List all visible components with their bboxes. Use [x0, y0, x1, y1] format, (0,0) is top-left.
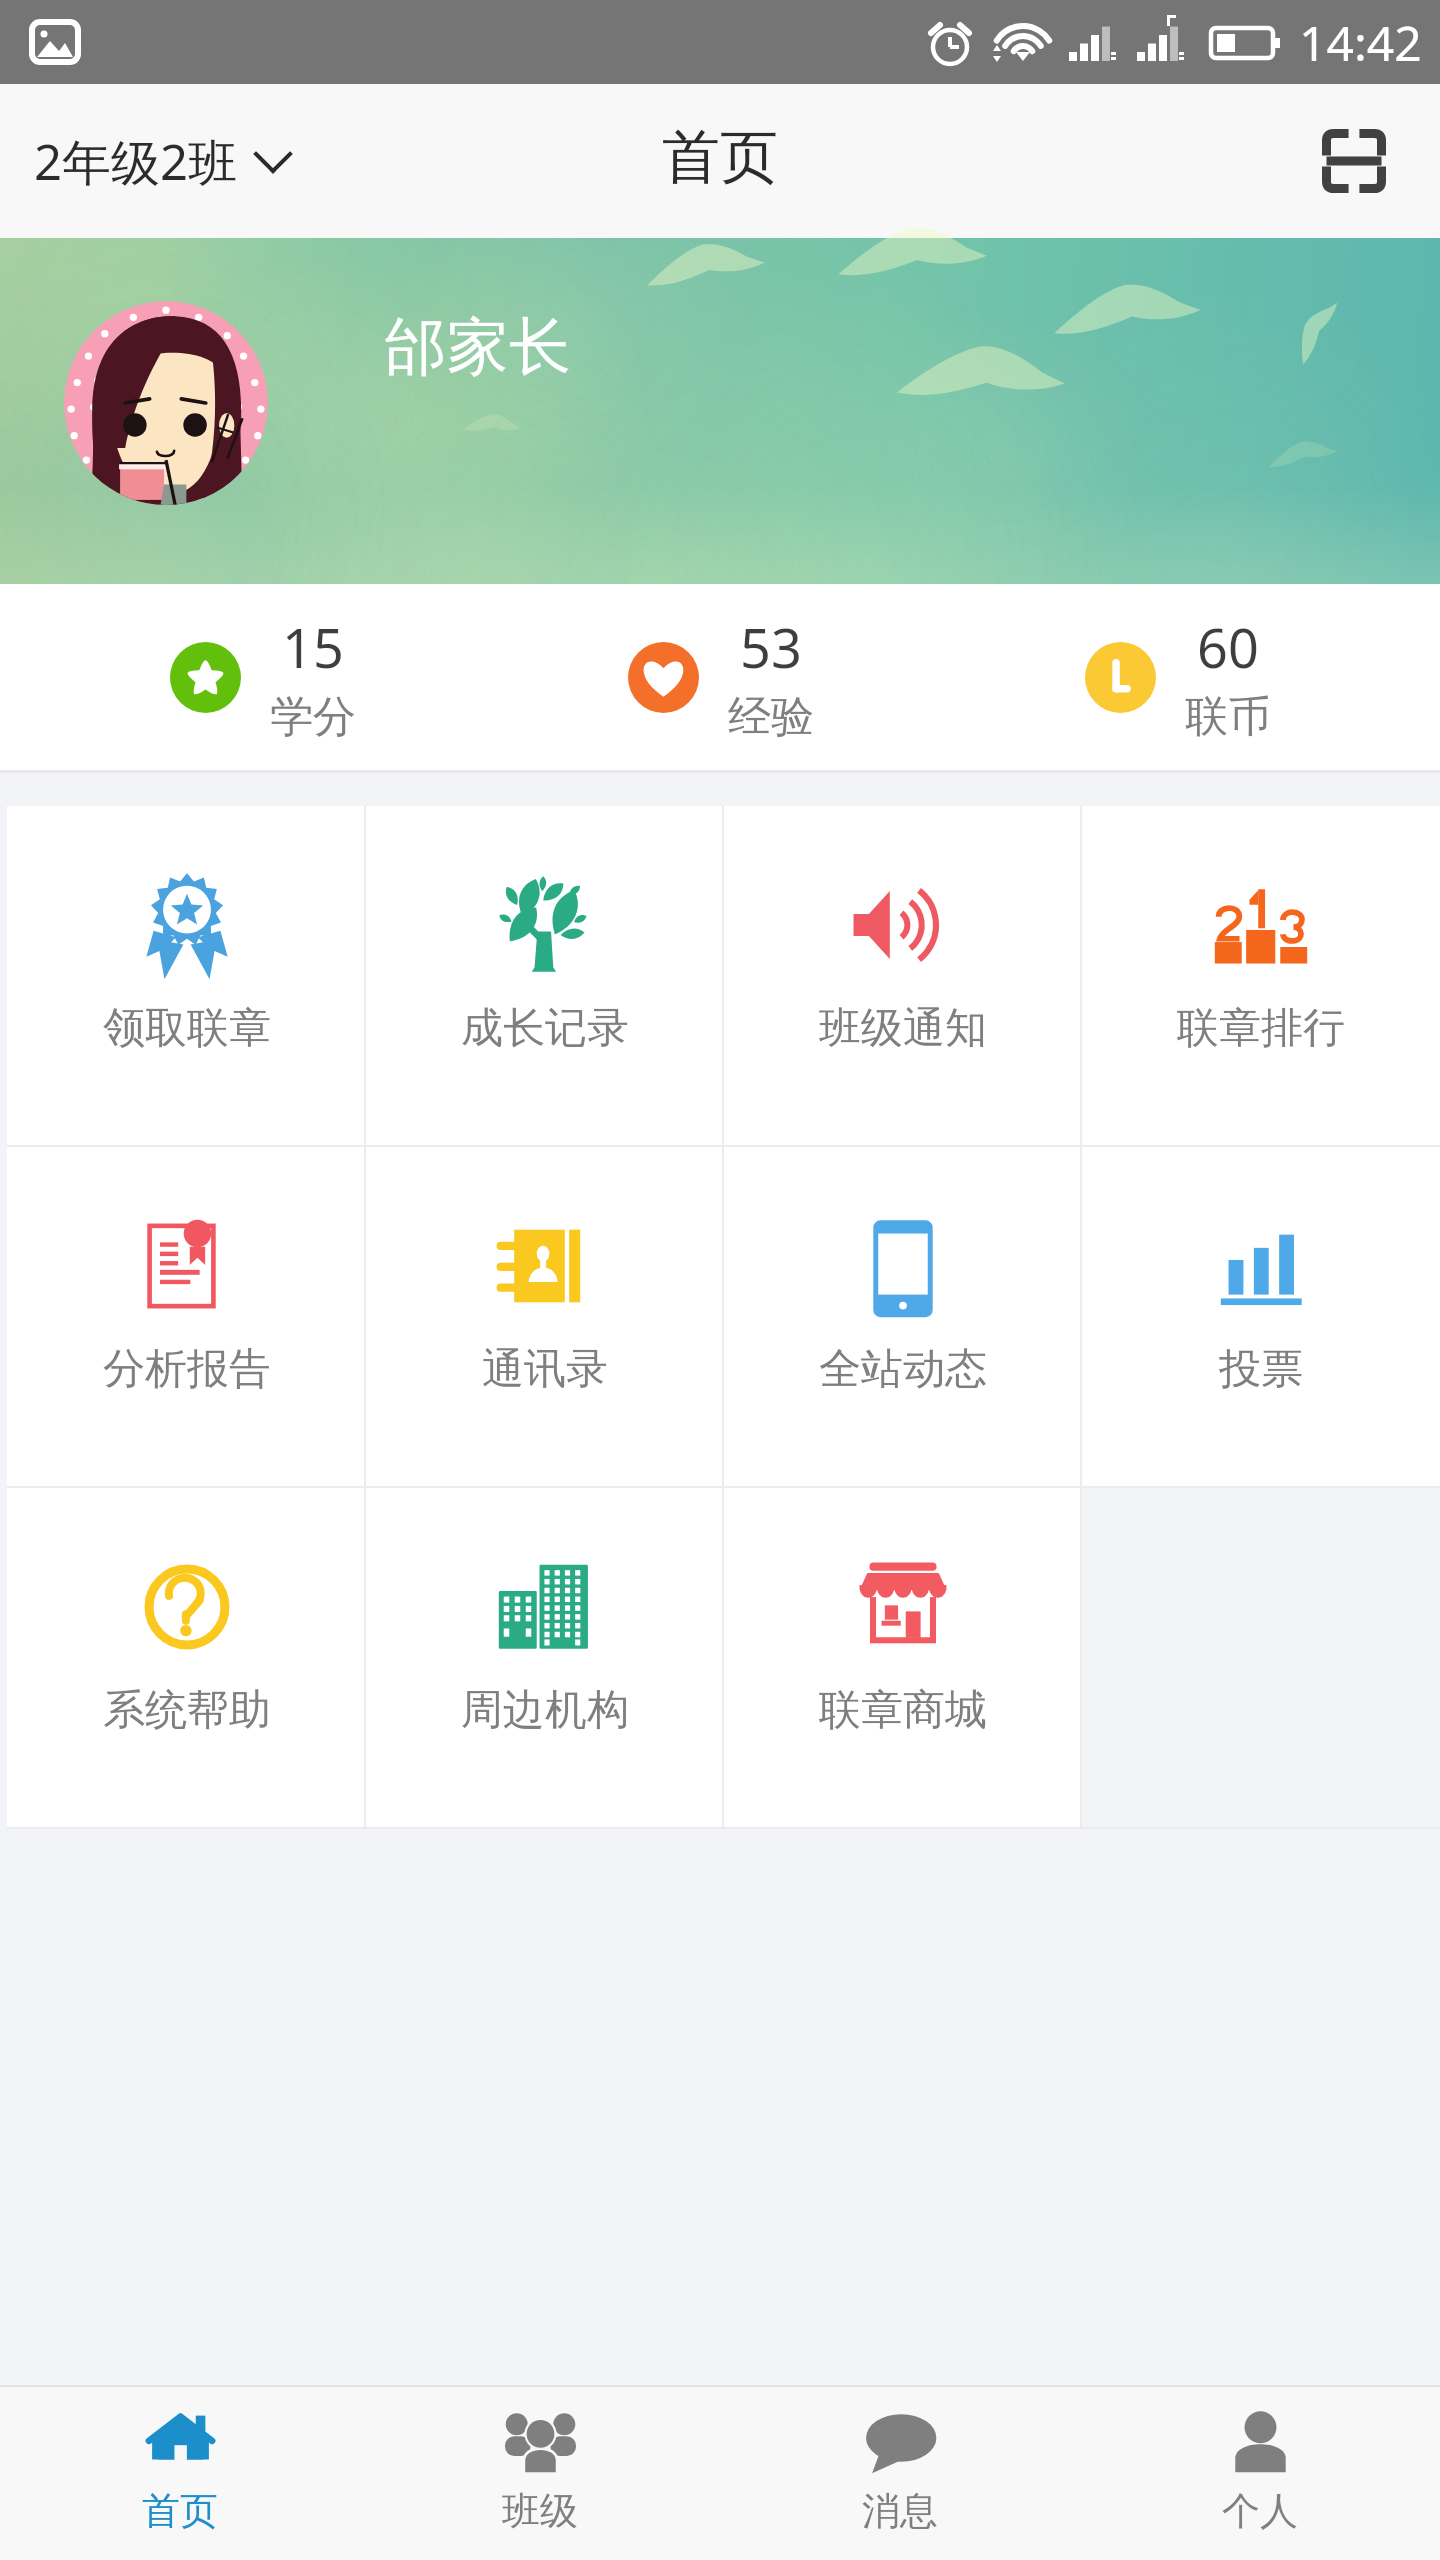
button[interactable]: 首页: [0, 2387, 360, 2560]
button[interactable]: 周边机构: [366, 1488, 724, 1827]
staticText: 消息: [862, 2487, 938, 2535]
button[interactable]: 投票: [1082, 1147, 1440, 1486]
staticText: 15: [282, 610, 344, 684]
staticText: 成长记录: [461, 1002, 629, 1055]
staticText: 领取联章: [103, 1002, 271, 1055]
staticText: 邰家长: [385, 308, 571, 386]
button[interactable]: 联章商城: [724, 1488, 1082, 1827]
button[interactable]: 班级通知: [724, 806, 1082, 1145]
button[interactable]: 通讯录: [366, 1147, 724, 1486]
staticText: 学分: [270, 690, 356, 744]
staticText: 53: [740, 610, 802, 684]
button[interactable]: 个人: [1080, 2387, 1440, 2560]
button[interactable]: 全站动态: [724, 1147, 1082, 1486]
staticText: 班级: [502, 2487, 578, 2535]
staticText: 个人: [1222, 2487, 1298, 2535]
staticText: 全站动态: [819, 1343, 987, 1396]
staticText: 周边机构: [461, 1684, 629, 1737]
button[interactable]: 2年级2班: [0, 84, 316, 238]
staticText: 班级通知: [819, 1002, 987, 1055]
button[interactable]: 消息: [720, 2387, 1080, 2560]
staticText: 分析报告: [103, 1343, 271, 1396]
button[interactable]: 班级: [360, 2387, 720, 2560]
staticText: 首页: [662, 121, 778, 194]
button[interactable]: 60: [949, 610, 1406, 744]
button[interactable]: 53: [492, 610, 949, 744]
staticText: 60: [1197, 610, 1259, 684]
button[interactable]: 15: [34, 610, 492, 744]
staticText: 联币: [1185, 690, 1271, 744]
staticText: 投票: [1219, 1343, 1303, 1396]
button[interactable]: 领取联章: [7, 806, 366, 1145]
staticText: 14:42: [1299, 10, 1422, 75]
staticText: 通讯录: [482, 1343, 608, 1396]
button[interactable]: Scan QR code: [1304, 111, 1404, 211]
staticText: 联章商城: [819, 1684, 987, 1737]
button[interactable]: 联章排行: [1082, 806, 1440, 1145]
button[interactable]: Profile avatar: [64, 301, 268, 505]
button[interactable]: 分析报告: [7, 1147, 366, 1486]
staticText: 首页: [142, 2487, 218, 2535]
staticText: 系统帮助: [103, 1684, 271, 1737]
button[interactable]: 成长记录: [366, 806, 724, 1145]
staticText: 联章排行: [1177, 1002, 1345, 1055]
staticText: 2年级2班: [34, 128, 238, 195]
button[interactable]: 系统帮助: [7, 1488, 366, 1827]
staticText: 经验: [728, 690, 814, 744]
